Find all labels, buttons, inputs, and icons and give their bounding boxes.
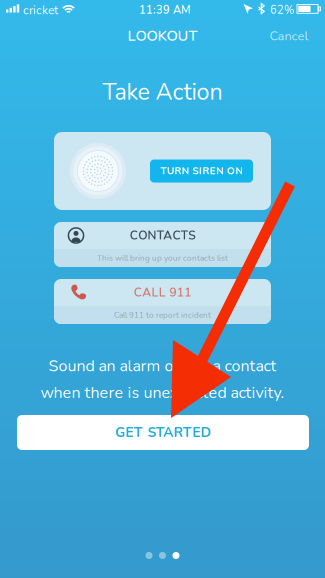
staticText: GET STARTED bbox=[115, 423, 211, 442]
staticText: Sound an alarm or call a contact bbox=[48, 355, 276, 377]
staticText: TURN SIREN ON bbox=[161, 164, 242, 178]
staticText: Call 911 to report incident bbox=[114, 309, 211, 321]
button[interactable]: CALL 911 bbox=[54, 279, 271, 324]
button[interactable]: TURN SIREN ON bbox=[150, 159, 253, 182]
staticText: 11:39 AM bbox=[139, 2, 191, 18]
button[interactable]: CONTACTS bbox=[54, 222, 271, 267]
button[interactable]: GET STARTED bbox=[17, 415, 309, 450]
staticText: Take Action bbox=[102, 76, 222, 108]
staticText: CONTACTS bbox=[130, 227, 195, 244]
staticText: when there is unexpected activity. bbox=[40, 382, 284, 404]
staticText: CALL 911 bbox=[134, 284, 191, 301]
staticText: Cancel bbox=[269, 27, 308, 45]
staticText: cricket bbox=[23, 2, 58, 18]
staticText: This will bring up your contacts list bbox=[97, 252, 228, 264]
staticText: LOOKOUT bbox=[127, 26, 197, 46]
staticText: 62% bbox=[270, 2, 294, 18]
button[interactable]: Cancel bbox=[263, 23, 315, 49]
